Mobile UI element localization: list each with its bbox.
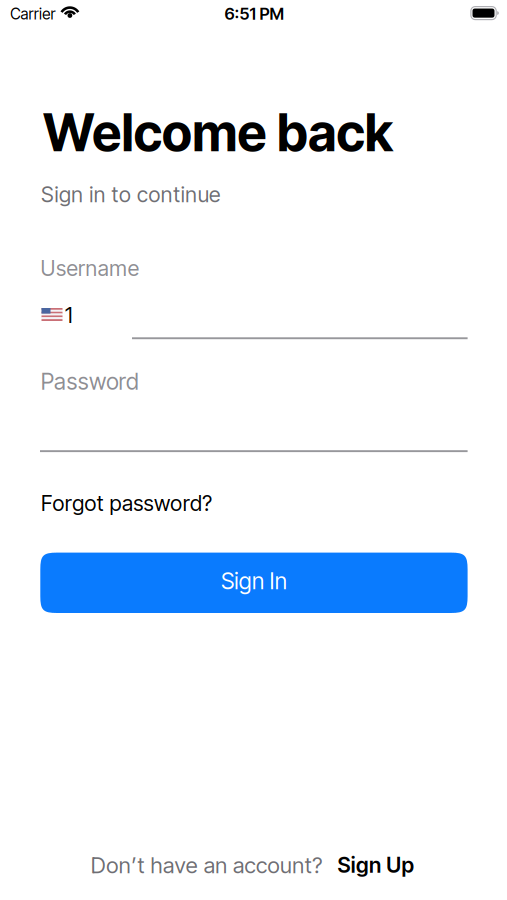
staticText: Password xyxy=(41,368,139,395)
staticText: Welcome back xyxy=(43,101,393,164)
staticText: Sign In xyxy=(221,567,287,595)
staticText: Don’t have an account? xyxy=(91,852,322,878)
button[interactable]: Sign Up xyxy=(338,852,414,878)
staticText: 1 xyxy=(65,302,73,328)
staticText: Sign Up xyxy=(338,852,414,878)
button[interactable]: Forgot password? xyxy=(41,490,212,516)
staticText: Forgot password? xyxy=(41,490,212,516)
staticText: 6:51 PM xyxy=(224,4,284,24)
staticText: Carrier xyxy=(10,4,55,23)
button[interactable]: Country code xyxy=(41,300,75,329)
staticText: Sign in to continue xyxy=(41,181,220,207)
staticText: Username xyxy=(41,255,139,281)
button[interactable]: Sign In xyxy=(40,553,468,613)
